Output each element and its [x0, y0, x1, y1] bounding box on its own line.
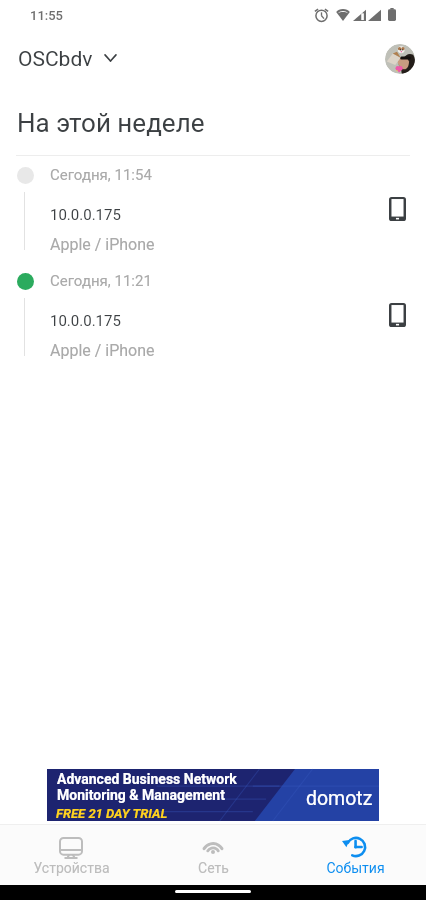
staticText: 11:55	[30, 8, 63, 23]
staticText: Сегодня, 11:54	[50, 166, 152, 184]
other: Events	[343, 835, 367, 859]
staticText: Устройства	[33, 860, 110, 876]
staticText: События	[326, 860, 385, 876]
button[interactable]: Сегодня, 11:54	[0, 156, 426, 262]
staticText: Advanced Business Network	[57, 771, 237, 787]
button[interactable]: Events	[284, 825, 426, 885]
staticText: 10.0.0.175	[50, 206, 121, 224]
button[interactable]: OSCbdv	[12, 40, 130, 74]
button[interactable]: Network	[142, 825, 284, 885]
other: Devices	[59, 835, 83, 859]
staticText: Monitoring & Management	[57, 787, 225, 803]
other: Phone device	[389, 303, 406, 327]
staticText: Apple / iPhone	[50, 341, 155, 360]
staticText: Apple / iPhone	[50, 235, 155, 254]
staticText: Сеть	[198, 860, 229, 876]
button[interactable]: Advertisement: Domotz	[47, 769, 379, 821]
staticText: FREE 21 DAY TRIAL	[56, 806, 168, 821]
button[interactable]: Сегодня, 11:21	[0, 262, 426, 368]
button[interactable]: Devices	[0, 825, 142, 885]
other: Phone device	[389, 197, 406, 221]
staticText: 10.0.0.175	[50, 312, 121, 330]
staticText: OSCbdv	[18, 47, 93, 72]
staticText: domotz	[306, 787, 373, 810]
other: Network	[201, 835, 225, 859]
button[interactable]: Account	[377, 36, 423, 82]
staticText: Сегодня, 11:21	[50, 272, 152, 290]
staticText: На этой неделе	[17, 108, 205, 138]
